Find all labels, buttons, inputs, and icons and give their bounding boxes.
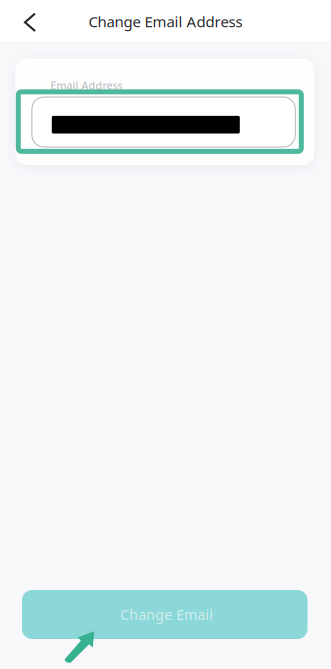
- staticText: Change Email Address: [88, 11, 242, 32]
- staticText: Change Email: [120, 605, 213, 624]
- button[interactable]: Change Email: [22, 590, 307, 639]
- button[interactable]: Back: [9, 2, 51, 43]
- staticText: Email Address: [51, 78, 123, 93]
